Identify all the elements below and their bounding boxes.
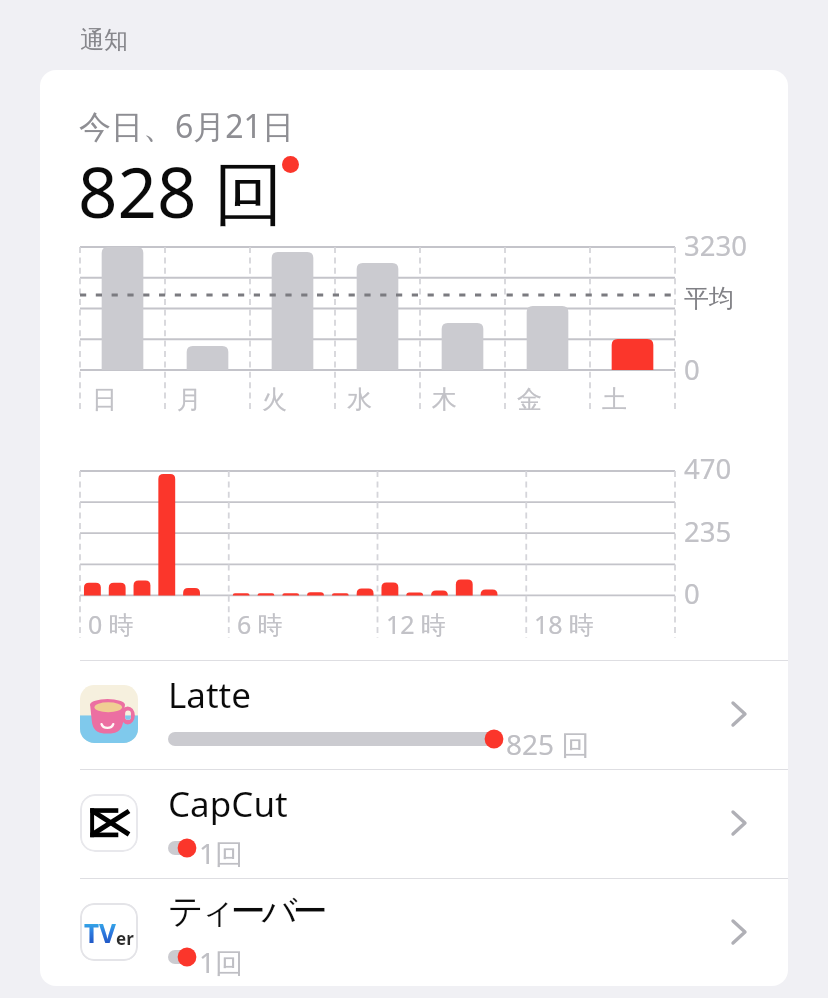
- staticText: CapCut: [168, 780, 288, 828]
- button[interactable]: CapCut: [80, 769, 788, 877]
- staticText: TV: [84, 915, 116, 950]
- staticText: 日: [92, 384, 117, 415]
- staticText: 825 回: [506, 725, 590, 763]
- staticText: 12 時: [386, 607, 447, 641]
- staticText: ティーバー: [168, 889, 324, 933]
- staticText: 月: [177, 384, 202, 415]
- staticText: 0 時: [88, 607, 134, 641]
- staticText: 金: [517, 384, 542, 415]
- staticText: 火: [262, 384, 287, 415]
- staticText: 18 時: [534, 607, 595, 641]
- staticText: 3230: [684, 227, 747, 264]
- staticText: 平均: [684, 283, 734, 314]
- staticText: 6 時: [237, 607, 283, 641]
- staticText: 木: [432, 384, 457, 415]
- staticText: 235: [684, 513, 732, 550]
- staticText: 828 回: [78, 144, 284, 238]
- staticText: er: [116, 927, 134, 950]
- staticText: 1回: [199, 834, 244, 872]
- staticText: 0: [684, 351, 700, 388]
- other: Latte details: [732, 702, 746, 726]
- button[interactable]: Latte: [80, 660, 788, 768]
- staticText: Latte: [168, 671, 251, 719]
- staticText: 今日、6月21日: [79, 104, 294, 148]
- button[interactable]: TV: [80, 878, 788, 986]
- other: CapCut details: [732, 811, 746, 835]
- staticText: 土: [602, 384, 627, 415]
- staticText: 通知: [80, 25, 128, 55]
- staticText: 1回: [199, 943, 244, 981]
- other: ティーバー details: [732, 920, 746, 944]
- staticText: 水: [347, 384, 372, 415]
- staticText: 0: [684, 575, 700, 612]
- staticText: 470: [684, 450, 732, 487]
